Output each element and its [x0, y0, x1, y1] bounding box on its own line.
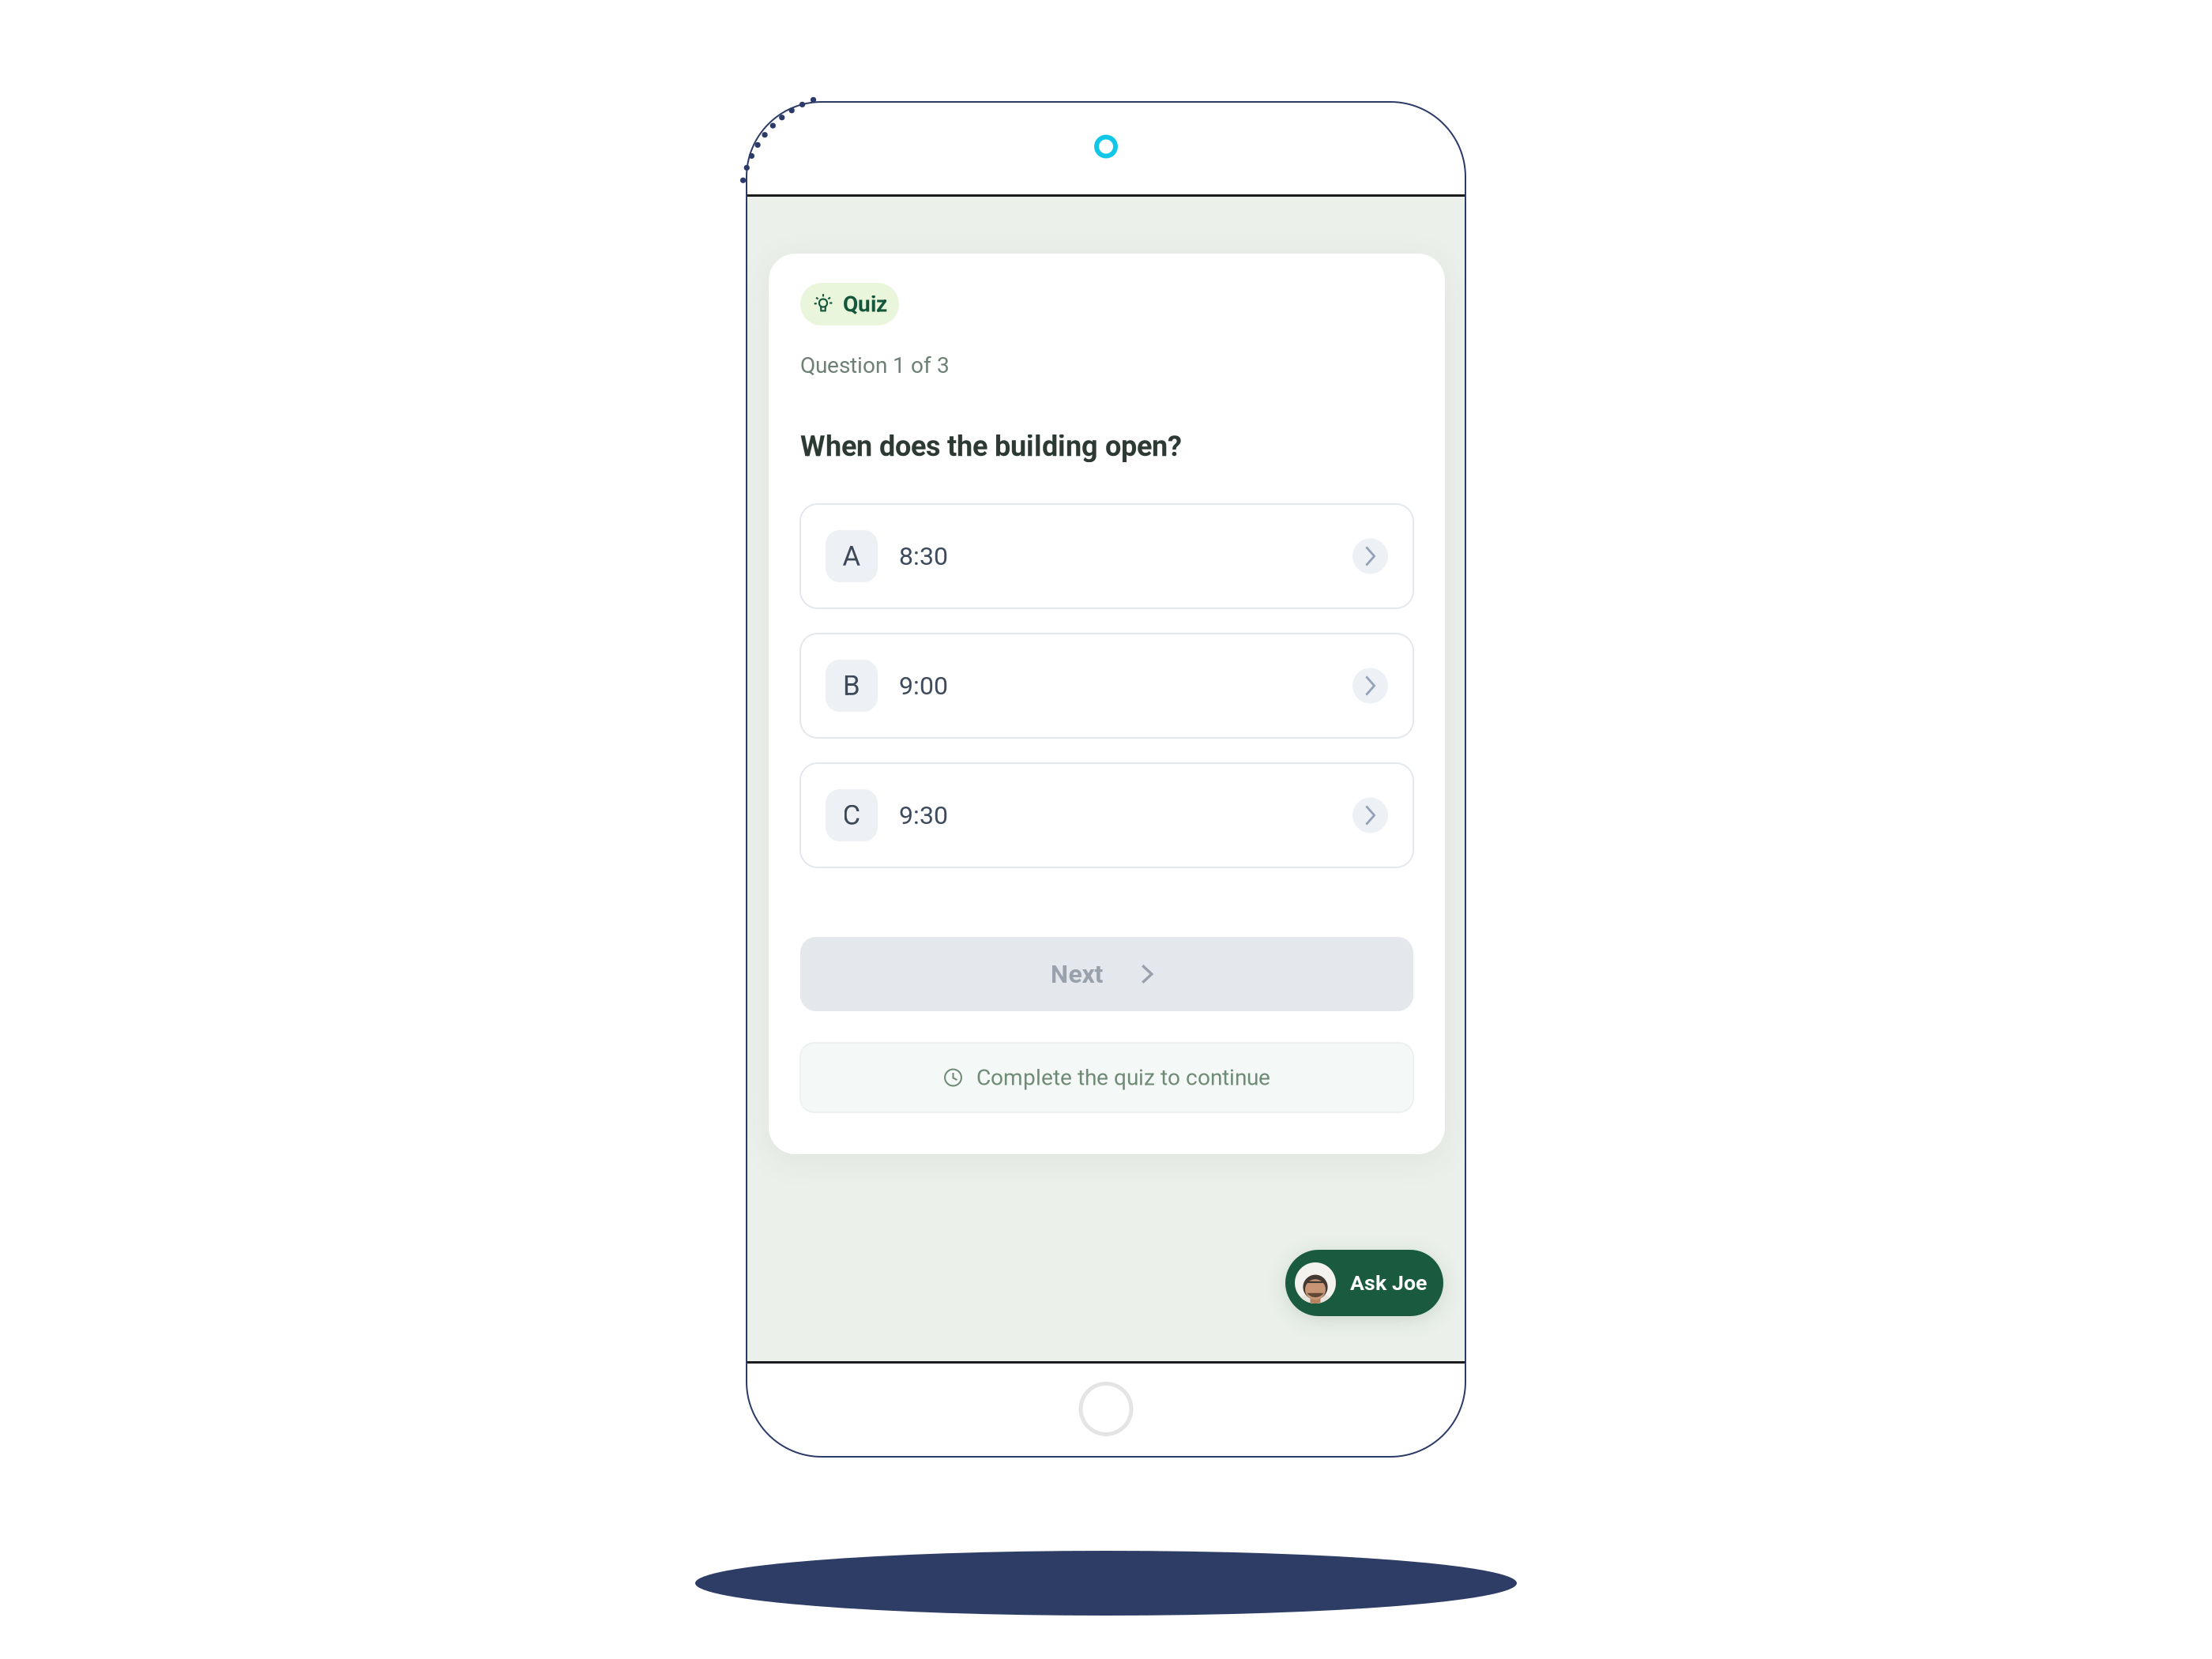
staticText: C	[843, 799, 861, 831]
staticText: Ask Joe	[1350, 1271, 1427, 1295]
staticText: Quiz	[843, 291, 887, 317]
staticText: When does the building open?	[800, 430, 1182, 463]
button[interactable]: Next	[800, 937, 1413, 1011]
staticText: Question 1 of 3	[800, 352, 950, 378]
button[interactable]: B	[800, 634, 1413, 738]
staticText: Next	[1050, 959, 1103, 989]
button[interactable]: A	[800, 504, 1413, 608]
staticText: 9:00	[899, 671, 948, 700]
staticText: 9:30	[899, 800, 948, 830]
button[interactable]: Ask Joe	[1285, 1250, 1443, 1316]
staticText: Complete the quiz to continue	[976, 1065, 1270, 1091]
button[interactable]: C	[800, 763, 1413, 867]
staticText: B	[843, 670, 860, 702]
staticText: 8:30	[899, 541, 948, 571]
staticText: A	[843, 540, 861, 572]
